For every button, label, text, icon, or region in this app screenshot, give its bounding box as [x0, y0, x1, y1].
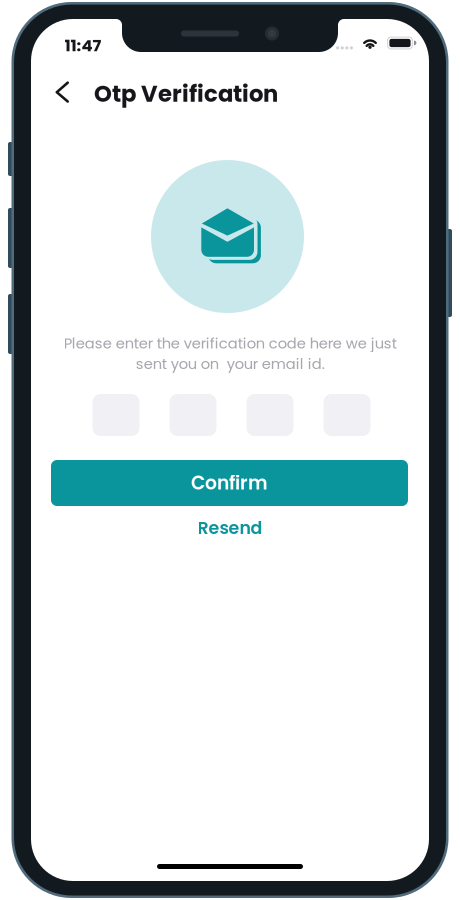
- staticText: 11:47: [64, 34, 101, 57]
- button[interactable]: Confirm: [51, 460, 408, 506]
- staticText: Otp Verification: [94, 78, 278, 110]
- staticText: Please enter the verification code here …: [63, 333, 396, 374]
- button[interactable]: Resend: [170, 515, 290, 541]
- staticText: Confirm: [191, 470, 268, 496]
- staticText: Resend: [197, 516, 262, 540]
- button[interactable]: Back: [45, 71, 78, 113]
